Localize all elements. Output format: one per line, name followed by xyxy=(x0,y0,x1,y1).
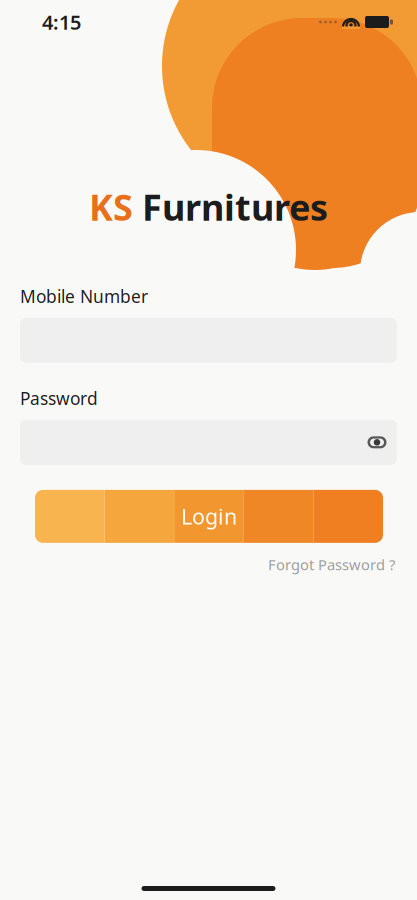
staticText: Forgot Password ? xyxy=(268,555,395,574)
button[interactable]: Login xyxy=(35,490,383,543)
staticText: Mobile Number xyxy=(20,285,148,308)
staticText: Furnitures xyxy=(133,183,328,231)
staticText: Password xyxy=(20,387,98,410)
button[interactable]: Show password xyxy=(357,420,397,465)
staticText: 4:15 xyxy=(42,9,81,35)
staticText: KS xyxy=(89,183,133,231)
button[interactable]: Forgot Password ? xyxy=(266,551,397,578)
staticText: Login xyxy=(181,502,237,530)
